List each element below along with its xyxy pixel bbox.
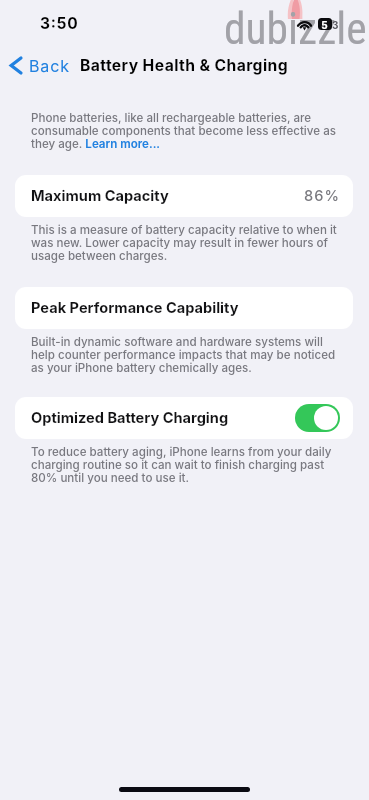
- staticText: Built-in dynamic software and hardware s…: [31, 335, 343, 375]
- staticText: Optimized Battery Charging: [31, 409, 229, 427]
- staticText: dubizzle: [224, 4, 367, 55]
- staticText: Peak Performance Capability: [31, 299, 239, 317]
- staticText: To reduce battery aging, iPhone learns f…: [31, 445, 343, 485]
- staticText: This is a measure of battery capacity re…: [31, 223, 343, 263]
- staticText: 3:50: [40, 14, 79, 33]
- button[interactable]: Peak Performance Capability: [15, 287, 353, 329]
- staticText: Battery Health & Charging: [80, 56, 289, 75]
- button[interactable]: Back: [6, 53, 73, 78]
- staticText: Phone batteries, like all rechargeable b…: [31, 111, 343, 151]
- staticText: 3: [332, 19, 339, 31]
- button[interactable]: Optimized Battery Charging: [15, 397, 353, 439]
- button[interactable]: Maximum Capacity: [15, 175, 353, 217]
- staticText: Back: [29, 56, 70, 75]
- staticText: 5: [321, 19, 328, 31]
- button[interactable]: Optimized Battery Charging: [295, 404, 340, 432]
- staticText: Maximum Capacity: [31, 187, 169, 205]
- staticText: 86%: [304, 187, 340, 205]
